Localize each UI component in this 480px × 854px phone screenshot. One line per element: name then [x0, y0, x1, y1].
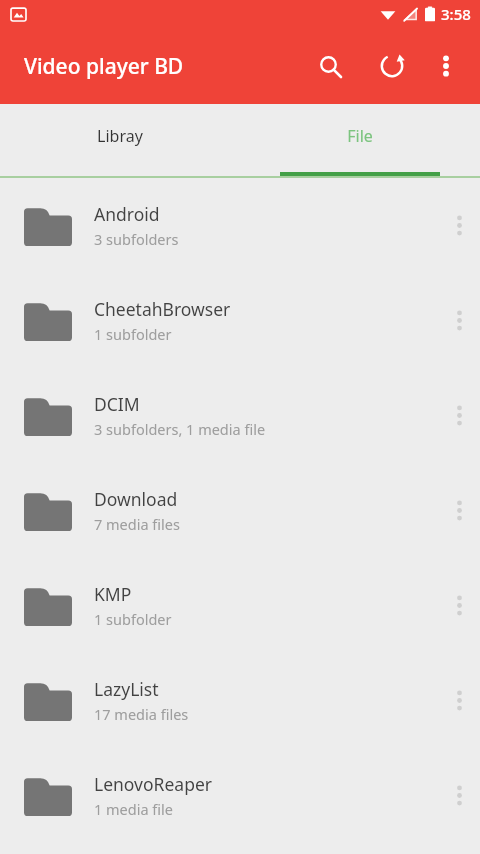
button[interactable]: Libray: [0, 104, 240, 178]
button[interactable]: Refresh: [368, 42, 416, 90]
staticText: LenovoReaper: [94, 772, 213, 796]
button[interactable]: More options for KMP: [438, 558, 480, 653]
staticText: File: [347, 125, 373, 147]
staticText: 3:58: [441, 4, 471, 24]
button[interactable]: CheetahBrowser: [0, 273, 480, 368]
staticText: CheetahBrowser: [94, 297, 231, 321]
staticText: Download: [94, 487, 178, 511]
button[interactable]: More options for LazyList: [438, 653, 480, 748]
staticText: 7 media files: [94, 514, 180, 534]
button[interactable]: Download: [0, 463, 480, 558]
staticText: 1 subfolder: [94, 324, 172, 344]
button[interactable]: File: [240, 104, 480, 178]
button[interactable]: More options for CheetahBrowser: [438, 273, 480, 368]
staticText: LazyList: [94, 677, 159, 701]
button[interactable]: KMP: [0, 558, 480, 653]
button[interactable]: Android: [0, 178, 480, 273]
button[interactable]: More options for DCIM: [438, 368, 480, 463]
button[interactable]: LazyList: [0, 653, 480, 748]
staticText: 1 subfolder: [94, 609, 172, 629]
staticText: DCIM: [94, 392, 140, 416]
button[interactable]: Search: [306, 42, 354, 90]
staticText: 3 subfolders, 1 media file: [94, 419, 266, 439]
staticText: Android: [94, 202, 160, 226]
staticText: Video player BD: [24, 52, 184, 81]
button[interactable]: LenovoReaper: [0, 748, 480, 843]
button[interactable]: More options for Download: [438, 463, 480, 558]
staticText: KMP: [94, 582, 132, 606]
button[interactable]: DCIM: [0, 368, 480, 463]
staticText: Libray: [97, 125, 143, 147]
button[interactable]: More options: [422, 42, 470, 90]
button[interactable]: More options for LenovoReaper: [438, 748, 480, 843]
button[interactable]: More options for Android: [438, 178, 480, 273]
staticText: 1 media file: [94, 799, 174, 819]
staticText: 3 subfolders: [94, 229, 179, 249]
staticText: 17 media files: [94, 704, 189, 724]
